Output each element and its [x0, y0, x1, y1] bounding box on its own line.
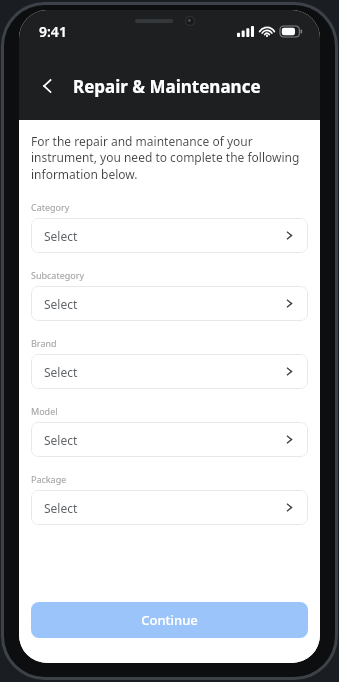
staticText: Repair & Maintenance — [73, 75, 261, 98]
staticText: Select — [44, 432, 78, 448]
staticText: Brand — [31, 337, 57, 349]
button[interactable]: Select — [31, 490, 308, 525]
staticText: Category — [31, 201, 70, 213]
staticText: Model — [31, 405, 58, 417]
staticText: Continue — [141, 611, 198, 629]
staticText: 9:41 — [39, 22, 67, 41]
button[interactable]: Select — [31, 286, 308, 321]
button[interactable]: Select — [31, 218, 308, 253]
button[interactable]: Back — [31, 69, 65, 103]
staticText: Select — [44, 364, 78, 380]
button[interactable]: Select — [31, 422, 308, 457]
staticText: Select — [44, 500, 78, 516]
staticText: Select — [44, 296, 78, 312]
staticText: Package — [31, 473, 67, 485]
staticText: Select — [44, 228, 78, 244]
button[interactable]: Select — [31, 354, 308, 389]
staticText: Subcategory — [31, 269, 85, 281]
button[interactable]: Continue — [31, 602, 308, 638]
staticText: For the repair and maintenance of your i… — [31, 133, 308, 183]
